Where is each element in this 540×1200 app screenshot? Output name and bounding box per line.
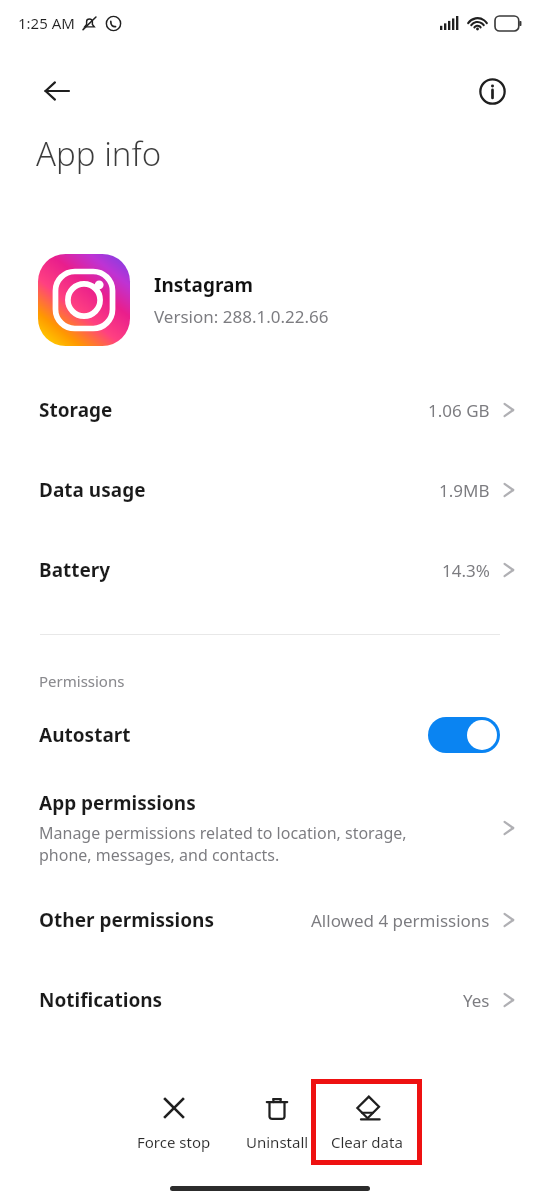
button[interactable]: Battery	[0, 536, 540, 604]
staticText: 1.9MB	[439, 479, 490, 502]
staticText: Other permissions	[39, 907, 214, 933]
button[interactable]: App permissions	[0, 780, 540, 876]
staticText: Force stop	[137, 1132, 211, 1152]
button[interactable]: Data usage	[0, 456, 540, 524]
staticText: 14.3%	[442, 559, 490, 582]
staticText: Allowed 4 permissions	[311, 909, 490, 932]
staticText: App info	[36, 131, 162, 176]
staticText: 1.06 GB	[428, 399, 490, 422]
staticText: Permissions	[39, 671, 125, 691]
button[interactable]: Force stop	[126, 1079, 222, 1165]
staticText: Version: 288.1.0.22.66	[154, 305, 329, 328]
staticText: App permissions	[39, 790, 196, 816]
staticText: Manage permissions related to location, …	[39, 822, 407, 866]
staticText: Clear data	[331, 1132, 403, 1152]
button[interactable]: Notifications	[0, 966, 540, 1034]
staticText: 1:25 AM	[18, 13, 75, 33]
button[interactable]: Autostart	[0, 701, 540, 769]
button[interactable]: Back	[26, 60, 88, 122]
button[interactable]: Storage	[0, 376, 540, 444]
staticText: Storage	[39, 397, 113, 423]
button[interactable]: Clear data	[311, 1079, 422, 1165]
staticText: Battery	[39, 557, 111, 583]
button[interactable]: Autostart toggle, on	[428, 717, 500, 753]
staticText: Autostart	[39, 722, 131, 748]
button[interactable]: Other permissions	[0, 886, 540, 954]
button[interactable]: Uninstall	[229, 1079, 325, 1165]
staticText: Instagram	[154, 272, 253, 298]
staticText: Data usage	[39, 477, 146, 503]
staticText: Yes	[463, 989, 490, 1012]
button[interactable]: Instagram	[0, 252, 540, 348]
staticText: Uninstall	[246, 1132, 309, 1152]
staticText: Notifications	[39, 987, 163, 1013]
button[interactable]: App details	[464, 63, 520, 119]
